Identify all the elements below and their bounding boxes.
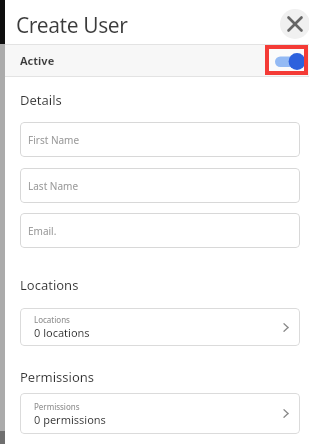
staticText: 0 permissions: [34, 412, 106, 427]
button[interactable]: Locations: [20, 308, 300, 346]
staticText: Locations: [20, 276, 79, 294]
staticText: Email.: [28, 224, 57, 238]
button[interactable]: Last Name: [20, 168, 300, 203]
button[interactable]: [280, 9, 309, 39]
staticText: Locations: [34, 314, 70, 325]
staticText: Permissions: [34, 401, 80, 412]
staticText: Permissions: [20, 368, 95, 386]
button[interactable]: Permissions: [20, 393, 300, 434]
staticText: Active: [20, 53, 55, 68]
staticText: Details: [20, 91, 62, 109]
button[interactable]: [265, 45, 308, 75]
button[interactable]: Email.: [20, 213, 300, 248]
staticText: 0 locations: [34, 325, 90, 340]
staticText: Create User: [16, 11, 128, 40]
staticText: Last Name: [28, 179, 79, 193]
staticText: First Name: [28, 133, 80, 147]
button[interactable]: First Name: [20, 122, 300, 157]
